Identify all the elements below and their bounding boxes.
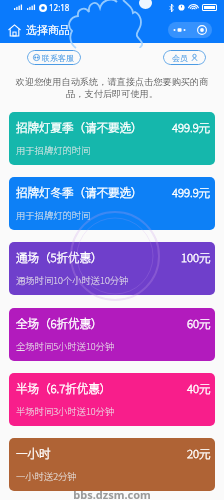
staticText: 一小时 [16,445,51,462]
button[interactable]: Menu and close [168,22,212,38]
button[interactable]: 一小时 [9,438,215,491]
button[interactable]: 招牌灯冬季（请不要选） [9,177,215,230]
staticText: 招牌灯冬季（请不要选） [16,184,143,201]
staticText: 499.9元 [172,119,211,136]
staticText: 全场（6折优惠） [16,315,103,332]
staticText: 欢迎您使用自动系统，请直接点击您要购买的商品，支付后即可使用。 [14,76,210,100]
staticText: 会员 [172,53,188,63]
staticText: 一小时送2分钟 [16,469,77,482]
button[interactable]: 全场（6折优惠） [9,308,215,361]
button[interactable]: 联系客服 [27,50,81,65]
staticText: 半场（6.7折优惠） [16,380,112,397]
staticText: 通场（5折优惠） [16,249,103,266]
staticText: bbs.dzsm.com [0,487,224,500]
staticText: 499.9元 [172,184,211,201]
button[interactable]: Home [8,24,21,37]
staticText: 40元 [187,380,211,397]
button[interactable]: 会员 [163,50,206,65]
staticText: 招牌灯夏季（请不要选） [16,119,143,136]
staticText: 20元 [187,445,211,462]
staticText: 全场时间5小时送10分钟 [16,339,115,352]
staticText: 用于招牌灯的时间 [16,143,91,156]
staticText: 通场时间10个小时送10分钟 [16,273,129,286]
button[interactable]: 通场（5折优惠） [9,242,215,295]
staticText: 用于招牌灯的时间 [16,208,91,221]
staticText: 100元 [181,249,211,266]
button[interactable]: 半场（6.7折优惠） [9,373,215,426]
staticText: 联系客服 [42,53,74,63]
staticText: 12:18 [49,2,70,13]
button[interactable]: 招牌灯夏季（请不要选） [9,112,215,165]
staticText: 半场时间3小时送10分钟 [16,404,115,417]
staticText: 60元 [187,315,211,332]
staticText: 选择商品 [26,23,70,37]
